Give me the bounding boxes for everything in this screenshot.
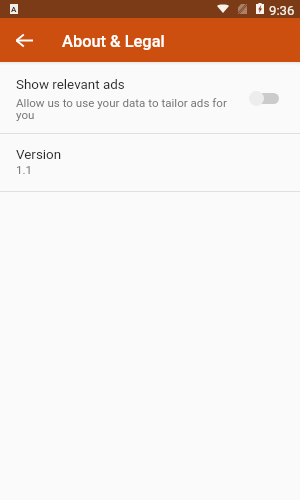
staticText: 1.1	[16, 163, 33, 177]
staticText: A	[11, 5, 17, 14]
staticText: Version	[16, 147, 62, 163]
button[interactable]: Navigate up	[7, 23, 41, 57]
staticText: 9:36	[269, 3, 295, 18]
button[interactable]: Show relevant ads	[249, 87, 279, 109]
staticText: About & Legal	[62, 32, 165, 51]
button[interactable]: Version	[0, 134, 300, 191]
staticText: Show relevant ads	[16, 77, 125, 93]
staticText: Allow us to use your data to tailor ads …	[16, 96, 241, 122]
button[interactable]: Show relevant ads	[0, 62, 300, 133]
